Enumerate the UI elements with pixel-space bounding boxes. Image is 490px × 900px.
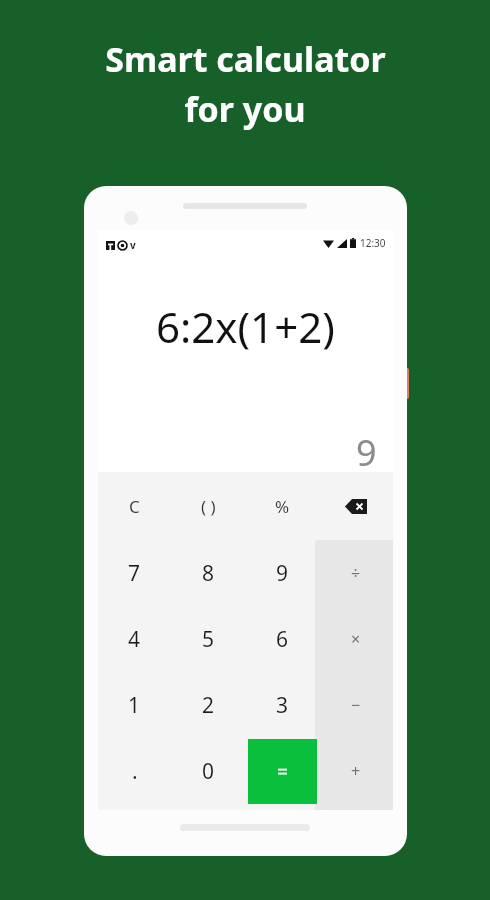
button[interactable]: 2 (171, 672, 245, 738)
button[interactable]: 7 (98, 540, 171, 606)
button[interactable]: ÷ (319, 540, 393, 606)
button[interactable]: C (98, 472, 171, 540)
button[interactable]: Backspace (319, 472, 393, 540)
staticText: ÷ (351, 562, 361, 584)
staticText: 4 (128, 625, 141, 654)
staticText: − (351, 694, 361, 716)
button[interactable]: = (248, 739, 317, 804)
button[interactable]: 6 (245, 606, 319, 672)
staticText: 3 (276, 691, 289, 720)
button[interactable]: − (319, 672, 393, 738)
staticText: 2 (202, 691, 215, 720)
button[interactable]: 0 (171, 738, 245, 804)
staticText: × (351, 628, 361, 650)
button[interactable]: ( ) (171, 472, 245, 540)
staticText: . (132, 757, 138, 786)
staticText: 12:30 (360, 236, 386, 250)
staticText: 0 (202, 757, 215, 786)
staticText: ( ) (201, 495, 216, 518)
button[interactable]: 3 (245, 672, 319, 738)
staticText: 1 (128, 691, 141, 720)
button[interactable]: + (319, 738, 393, 804)
staticText: 8 (202, 559, 215, 588)
staticText: for you (184, 86, 306, 132)
staticText: 6:2x(1+2) (156, 298, 335, 355)
button[interactable]: 4 (98, 606, 171, 672)
staticText: 7 (128, 559, 141, 588)
button[interactable]: . (98, 738, 171, 804)
staticText: = (277, 759, 288, 785)
staticText: 6 (276, 625, 289, 654)
staticText: 5 (202, 625, 215, 654)
button[interactable]: 9 (245, 540, 319, 606)
staticText: 9 (356, 428, 377, 477)
staticText: + (351, 760, 361, 782)
staticText: Smart calculator (105, 36, 386, 82)
staticText: 9 (276, 559, 289, 588)
button[interactable]: 8 (171, 540, 245, 606)
button[interactable]: 5 (171, 606, 245, 672)
button[interactable]: × (319, 606, 393, 672)
staticText: v (130, 238, 136, 252)
staticText: C (129, 495, 140, 518)
button[interactable]: % (245, 472, 319, 540)
button[interactable]: 1 (98, 672, 171, 738)
staticText: % (275, 495, 290, 518)
